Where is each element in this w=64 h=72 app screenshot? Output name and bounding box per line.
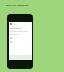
button[interactable] bbox=[9, 41, 32, 43]
staticText: Favorite addresses bbox=[6, 3, 29, 6]
button[interactable]: Back bbox=[9, 22, 32, 27]
button[interactable] bbox=[9, 37, 32, 39]
button[interactable]: Favorite addresses bbox=[6, 3, 29, 6]
